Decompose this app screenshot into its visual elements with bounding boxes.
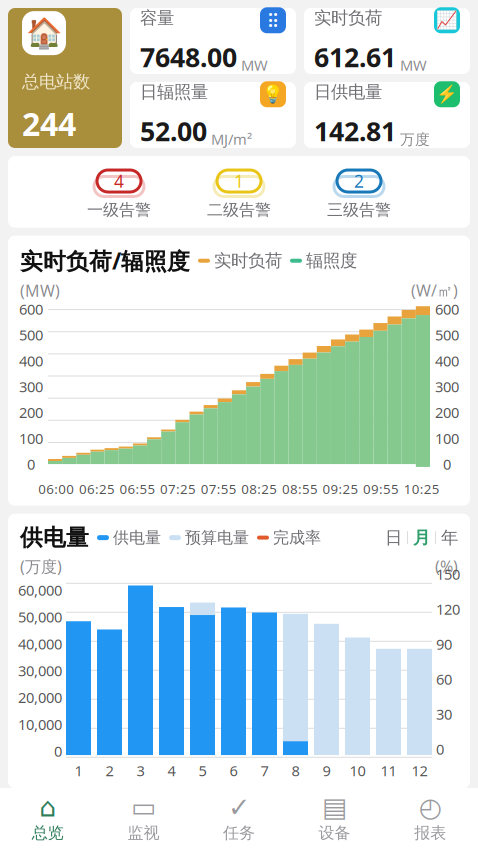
staticText: 报表: [414, 823, 446, 843]
staticText: 150: [436, 564, 460, 584]
staticText: 供电量: [20, 524, 89, 551]
staticText: 0: [54, 741, 62, 761]
staticText: 供电量: [113, 528, 161, 547]
staticText: 06:00: [38, 480, 74, 498]
staticText: 600: [19, 299, 43, 319]
staticText: 8: [291, 761, 299, 780]
staticText: 52.00: [140, 113, 207, 149]
staticText: 600: [435, 299, 459, 319]
staticText: 12: [411, 761, 427, 780]
staticText: 09:55: [363, 480, 399, 498]
staticText: 08:25: [241, 480, 277, 498]
button[interactable]: 容量: [130, 8, 296, 74]
staticText: ⌂: [39, 792, 56, 822]
staticText: 2: [354, 169, 364, 192]
staticText: 2: [105, 761, 113, 780]
staticText: 二级告警: [207, 200, 271, 220]
button[interactable]: ✓: [191, 789, 287, 849]
staticText: 一级告警: [87, 200, 151, 220]
staticText: 1: [234, 169, 244, 192]
staticText: ⚡: [436, 84, 458, 104]
staticText: 10: [349, 761, 365, 780]
button[interactable]: 日辐照量: [130, 82, 296, 148]
staticText: MW: [241, 55, 268, 75]
button[interactable]: 日供电量: [304, 82, 470, 148]
button[interactable]: ◴: [382, 789, 478, 849]
staticText: 万度: [400, 131, 430, 149]
staticText: 月: [413, 527, 430, 548]
staticText: 500: [435, 325, 459, 345]
staticText: 6: [229, 761, 237, 780]
staticText: ⁝⁝: [268, 9, 278, 32]
staticText: ▤: [322, 792, 347, 822]
staticText: ✓: [228, 792, 250, 822]
staticText: 9: [322, 761, 330, 780]
button[interactable]: 2: [299, 164, 419, 220]
staticText: 3: [136, 761, 144, 780]
staticText: 200: [435, 403, 459, 422]
staticText: 7: [260, 761, 268, 780]
staticText: 06:25: [79, 480, 115, 498]
staticText: 400: [435, 351, 459, 370]
button[interactable]: 4: [59, 164, 179, 220]
staticText: 10,000: [18, 714, 62, 734]
staticText: 11: [380, 761, 396, 780]
staticText: 06:55: [119, 480, 155, 498]
staticText: 200: [19, 403, 43, 422]
button[interactable]: ▭: [96, 789, 191, 849]
staticText: 预算电量: [185, 528, 249, 547]
staticText: 0: [436, 739, 444, 759]
staticText: 日辐照量: [140, 81, 208, 103]
staticText: 142.81: [314, 113, 396, 149]
staticText: 10:25: [404, 480, 440, 498]
staticText: 40,000: [18, 634, 62, 653]
staticText: 总电站数: [22, 71, 90, 92]
staticText: 实时负荷: [214, 250, 282, 271]
staticText: 💡: [262, 84, 284, 104]
staticText: 7648.00: [140, 39, 237, 75]
staticText: 📈: [436, 10, 458, 30]
staticText: 总览: [32, 823, 64, 843]
staticText: 07:55: [201, 480, 237, 498]
staticText: 日: [385, 527, 402, 548]
staticText: 设备: [319, 823, 351, 843]
staticText: 90: [436, 634, 452, 654]
staticText: 60,000: [18, 580, 62, 600]
staticText: 50,000: [18, 607, 62, 627]
staticText: 09:25: [322, 480, 358, 498]
button[interactable]: 月: [413, 527, 430, 548]
button[interactable]: ▤: [287, 789, 382, 849]
staticText: 30,000: [18, 661, 62, 680]
staticText: (MW): [20, 280, 60, 301]
staticText: 300: [19, 377, 43, 396]
button[interactable]: 1: [179, 164, 299, 220]
staticText: ◴: [419, 792, 442, 822]
staticText: 辐照度: [306, 250, 357, 271]
staticText: 1: [74, 761, 82, 780]
staticText: ▭: [131, 792, 156, 822]
staticText: 实时负荷/辐照度: [20, 246, 190, 276]
staticText: 容量: [140, 7, 174, 29]
staticText: 400: [19, 351, 43, 370]
staticText: 08:55: [282, 480, 318, 498]
button[interactable]: ⌂: [0, 789, 96, 849]
staticText: 监视: [127, 823, 159, 843]
button[interactable]: 实时负荷: [304, 8, 470, 74]
staticText: MW: [400, 55, 427, 75]
staticText: 100: [19, 428, 43, 448]
staticText: 5: [198, 761, 206, 780]
staticText: 三级告警: [327, 200, 391, 220]
staticText: 120: [436, 599, 460, 619]
staticText: 任务: [223, 823, 255, 843]
staticText: 244: [22, 102, 76, 145]
staticText: 完成率: [273, 528, 321, 547]
staticText: 612.61: [314, 39, 396, 75]
button[interactable]: 年: [441, 527, 458, 548]
staticText: 100: [435, 428, 459, 448]
staticText: 实时负荷: [314, 7, 382, 29]
button[interactable]: 日: [385, 527, 402, 548]
staticText: 0: [27, 454, 35, 474]
staticText: (%): [435, 555, 458, 577]
staticText: 300: [435, 377, 459, 396]
button[interactable]: 🏠: [8, 8, 122, 148]
